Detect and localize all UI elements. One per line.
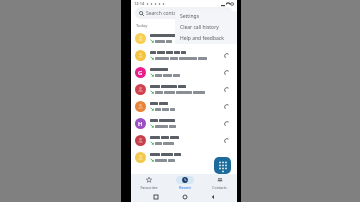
staticText: Settings — [180, 13, 200, 20]
button[interactable]: Call — [131, 47, 237, 64]
button[interactable]: Call — [221, 33, 233, 45]
button[interactable]: Search contacts — [135, 7, 233, 19]
button[interactable]: Recents — [151, 192, 160, 201]
button[interactable]: Settings — [175, 11, 237, 22]
staticText: Clear call history — [180, 24, 219, 31]
staticText: G — [138, 69, 143, 77]
button[interactable]: Contacts — [202, 174, 237, 191]
staticText: Search contacts — [146, 10, 183, 17]
button[interactable]: Call — [221, 101, 233, 113]
staticText: Today — [136, 23, 148, 28]
button[interactable]: Call — [131, 132, 237, 149]
button[interactable] — [131, 149, 237, 166]
staticText: Favourites — [140, 185, 158, 190]
button[interactable]: Clear call history — [175, 22, 237, 33]
button[interactable]: Back — [208, 192, 217, 201]
staticText: H — [138, 120, 143, 128]
staticText: Recent — [179, 185, 191, 190]
button[interactable]: Call — [221, 67, 233, 79]
staticText: 12:14 — [134, 1, 145, 6]
button[interactable]: G — [131, 64, 237, 81]
button[interactable]: Home — [180, 192, 189, 201]
button[interactable]: Help and feedback — [175, 33, 237, 44]
staticText: Help and feedback — [180, 35, 224, 42]
button[interactable]: Call — [131, 98, 237, 115]
button[interactable]: Call — [221, 135, 233, 147]
button[interactable]: H — [131, 115, 237, 132]
button[interactable]: Recent — [167, 174, 202, 191]
button[interactable]: Call — [221, 84, 233, 96]
staticText: Contacts — [212, 185, 227, 190]
button[interactable]: Call — [221, 50, 233, 62]
button[interactable]: Favourites — [131, 174, 167, 191]
button[interactable]: Call — [131, 30, 237, 47]
button[interactable]: Dialpad — [214, 157, 231, 174]
button[interactable]: Call — [131, 81, 237, 98]
button[interactable]: Call — [221, 118, 233, 130]
